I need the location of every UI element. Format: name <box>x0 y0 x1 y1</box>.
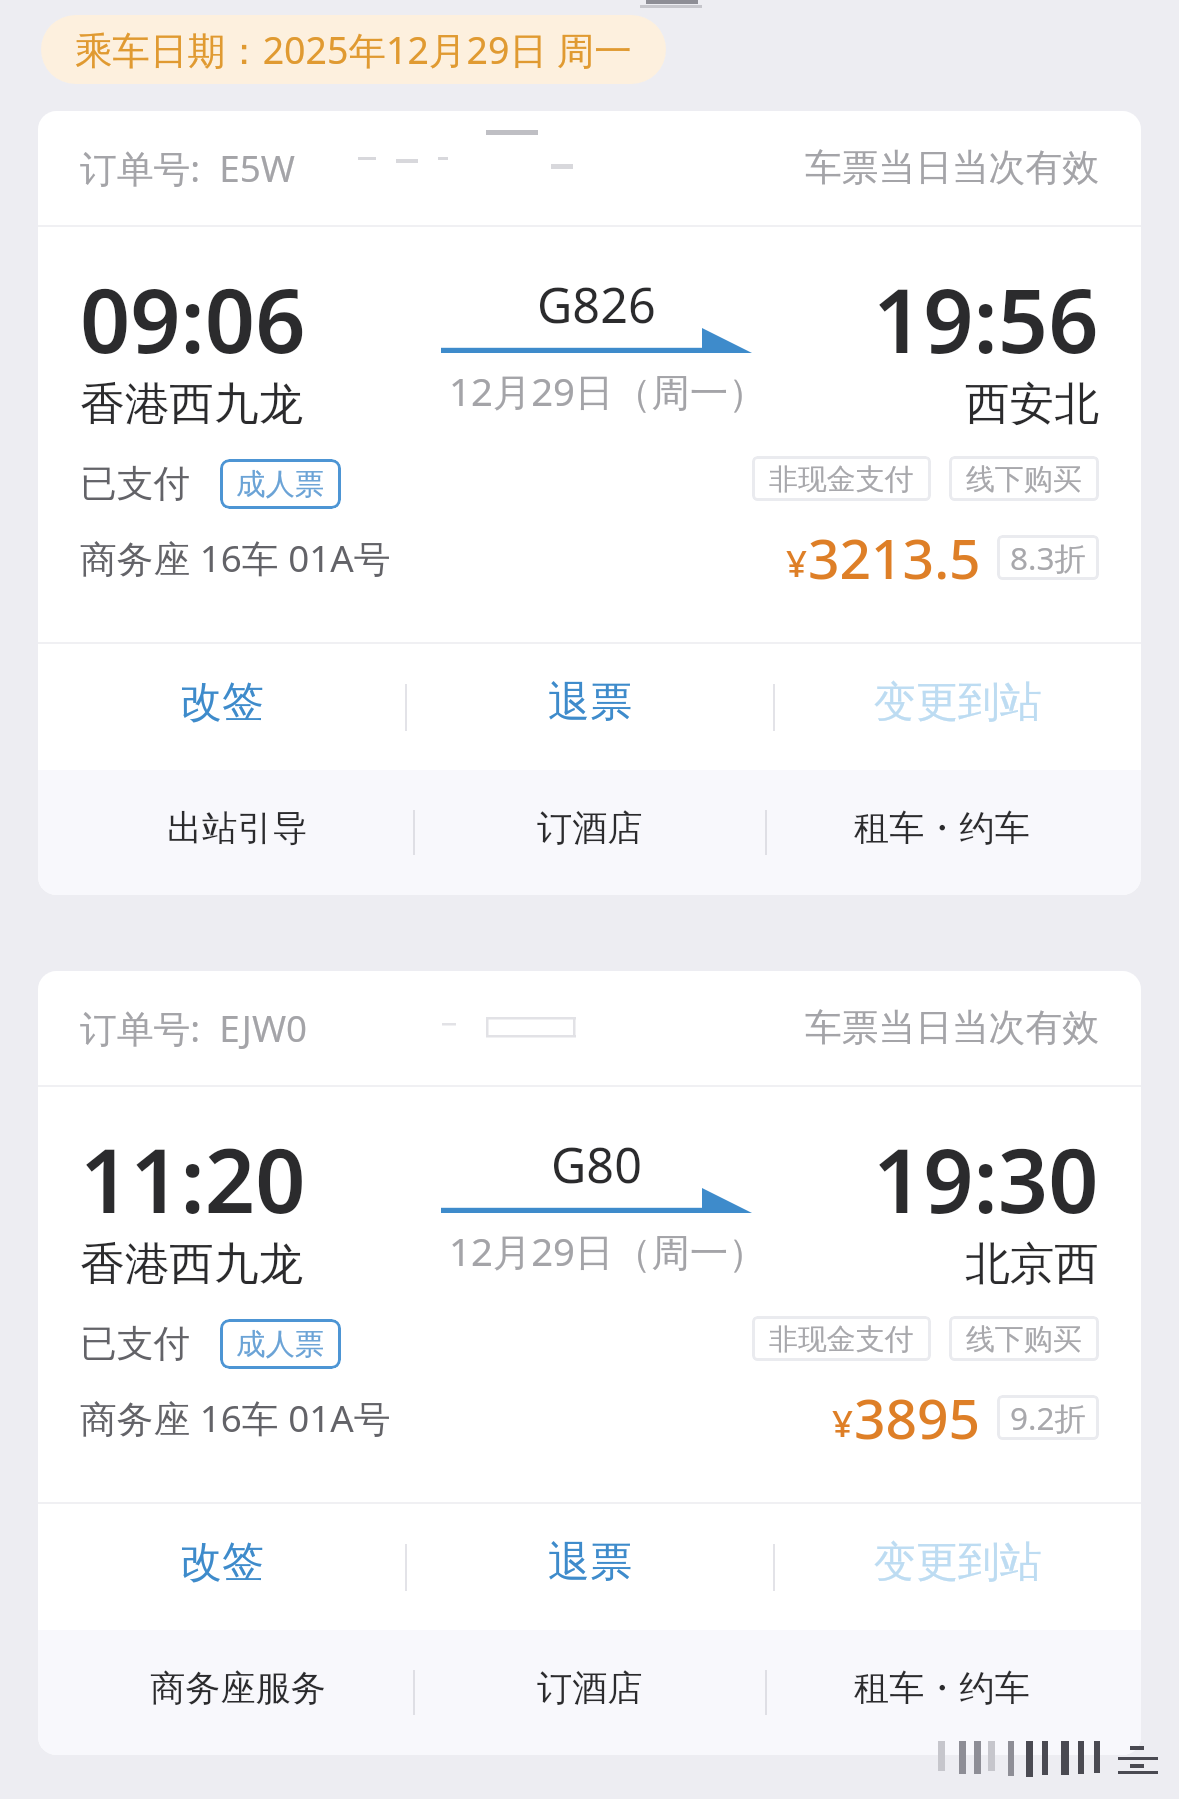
button[interactable]: 改签 <box>38 644 405 770</box>
staticText: 3895 <box>854 1380 981 1455</box>
button[interactable]: 退票 <box>407 644 773 770</box>
staticText: 线下购买 <box>966 1321 1082 1357</box>
staticText: 商务座服务 <box>150 1666 326 1710</box>
staticText: 19:30 <box>873 1119 1099 1239</box>
staticText: 成人票 <box>236 1326 325 1363</box>
button[interactable]: 变更到站 <box>775 1504 1141 1630</box>
button[interactable]: 退票 <box>407 1504 773 1630</box>
staticText: 变更到站 <box>874 1536 1042 1589</box>
staticText: 成人票 <box>236 466 325 503</box>
staticText: 12月29日（周一） <box>449 365 767 417</box>
button[interactable]: 订酒店 <box>415 770 765 895</box>
button[interactable]: 出站引导 <box>62 770 413 895</box>
staticText: 19:56 <box>873 259 1099 379</box>
staticText: 已支付 <box>80 461 191 507</box>
staticText: 非现金支付 <box>769 1321 914 1357</box>
staticText: G826 <box>537 271 656 337</box>
staticText: 车票当日当次有效 <box>805 145 1099 191</box>
staticText: 订酒店 <box>537 806 643 850</box>
staticText: 09:06 <box>80 259 306 379</box>
staticText: 变更到站 <box>874 676 1042 729</box>
staticText: 8.3折 <box>1010 536 1086 579</box>
button[interactable]: 变更到站 <box>775 644 1141 770</box>
staticText: 订酒店 <box>537 1666 643 1710</box>
button[interactable]: 租车・约车 <box>767 770 1117 895</box>
staticText: 已支付 <box>80 1321 191 1367</box>
staticText: 商务座 16车 01A号 <box>80 533 391 583</box>
staticText: 车票当日当次有效 <box>805 1005 1099 1051</box>
staticText: 11:20 <box>80 1119 306 1239</box>
staticText: 退票 <box>548 676 632 729</box>
staticText: 北京西 <box>965 1236 1099 1292</box>
staticText: 香港西九龙 <box>80 376 304 432</box>
button[interactable]: 商务座服务 <box>62 1630 413 1755</box>
staticText: 订单号: E5W <box>80 143 295 193</box>
staticText: 改签 <box>180 1536 264 1589</box>
staticText: 线下购买 <box>966 461 1082 497</box>
staticText: 改签 <box>180 676 264 729</box>
staticText: G80 <box>551 1131 642 1197</box>
staticText: 12月29日（周一） <box>449 1225 767 1277</box>
staticText: 香港西九龙 <box>80 1236 304 1292</box>
staticText: 租车・约车 <box>854 806 1030 850</box>
staticText: ¥ <box>832 1398 854 1448</box>
staticText: 商务座 16车 01A号 <box>80 1393 391 1443</box>
staticText: ¥ <box>786 538 808 588</box>
staticText: 退票 <box>548 1536 632 1589</box>
staticText: 9.2折 <box>1010 1396 1086 1439</box>
button[interactable]: 订酒店 <box>415 1630 765 1755</box>
staticText: 西安北 <box>965 376 1099 432</box>
button[interactable]: 租车・约车 <box>767 1630 1117 1755</box>
staticText: 乘车日期：2025年12月29日 周一 <box>75 24 632 75</box>
staticText: 出站引导 <box>167 806 308 850</box>
staticText: 3213.5 <box>808 520 981 595</box>
staticText: 租车・约车 <box>854 1666 1030 1710</box>
button[interactable]: 改签 <box>38 1504 405 1630</box>
staticText: 非现金支付 <box>769 461 914 497</box>
staticText: 订单号: EJW0 <box>80 1003 308 1053</box>
